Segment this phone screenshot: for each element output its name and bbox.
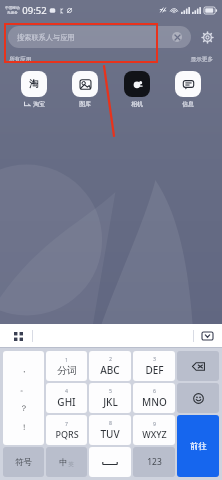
staticText: 英 (68, 461, 74, 468)
button[interactable]: 7 (46, 415, 87, 445)
button[interactable]: 显示更多 (190, 56, 213, 63)
button[interactable]: 中 (46, 447, 87, 477)
staticText: 123 (147, 456, 162, 468)
button[interactable]: 符号 (3, 447, 44, 477)
staticText: 中 (59, 457, 68, 468)
button[interactable]: 搜索联系人与应用 (8, 26, 191, 48)
staticText: 2 (109, 355, 112, 362)
button[interactable]: 9 (133, 415, 175, 445)
staticText: MNO (142, 395, 167, 409)
staticText: 淘宝 (33, 100, 45, 107)
staticText: 中国移动 (5, 6, 20, 11)
button[interactable]: 3 (133, 351, 175, 381)
staticText: 。 (20, 383, 28, 393)
staticText: ， (20, 364, 28, 374)
staticText: 搜索联系人与应用 (17, 33, 75, 42)
staticText: PQRS (55, 428, 79, 440)
button[interactable]: 2 (89, 351, 131, 381)
button[interactable]: 4 (46, 383, 87, 413)
button[interactable]: Backspace (177, 351, 219, 381)
button[interactable]: 8 (89, 415, 131, 445)
button[interactable]: 图库 (62, 69, 108, 109)
staticText: 3 (153, 355, 156, 362)
staticText: 显示更多 (190, 56, 213, 63)
button[interactable]: Clear (172, 32, 182, 42)
staticText: 7 (65, 420, 68, 427)
button[interactable]: Emoji (177, 383, 219, 413)
staticText: 4 (65, 387, 68, 394)
staticText: 5 (109, 387, 112, 394)
staticText: 所有应用 (9, 56, 32, 63)
staticText: 无服务 (7, 11, 18, 16)
button[interactable]: 1 (46, 351, 87, 381)
staticText: 信息 (182, 100, 194, 107)
staticText: JKL (103, 395, 118, 409)
button[interactable]: 淘 (11, 69, 57, 109)
staticText: ？ (20, 403, 28, 413)
button[interactable]: 123 (133, 447, 175, 477)
staticText: TUV (100, 427, 120, 441)
button[interactable]: ， (3, 351, 44, 445)
button[interactable]: 前往 (177, 415, 219, 477)
staticText: GHI (57, 395, 76, 409)
button[interactable]: Settings (198, 28, 216, 46)
button[interactable]: 信息 (165, 69, 211, 109)
staticText: 符号 (15, 457, 32, 468)
staticText: 1 (65, 356, 68, 363)
button[interactable]: 6 (133, 383, 175, 413)
staticText: ！ (20, 422, 28, 432)
staticText: 淘 (29, 78, 39, 90)
staticText: 8 (109, 419, 112, 426)
staticText: 图库 (79, 100, 91, 107)
staticText: 6 (153, 387, 156, 394)
button[interactable] (89, 447, 131, 477)
staticText: 前往 (190, 441, 207, 452)
button[interactable]: 5 (89, 383, 131, 413)
staticText: 相机 (131, 100, 143, 107)
staticText: DEF (145, 363, 164, 377)
staticText: 9 (153, 420, 156, 427)
staticText: 09:52 (22, 4, 47, 17)
staticText: WXYZ (142, 428, 167, 440)
button[interactable]: Hide keyboard (199, 328, 215, 344)
staticText: ABC (100, 363, 120, 377)
staticText: 分词 (57, 364, 77, 377)
button[interactable]: Keyboard menu (10, 328, 26, 344)
button[interactable]: 相机 (114, 69, 160, 109)
